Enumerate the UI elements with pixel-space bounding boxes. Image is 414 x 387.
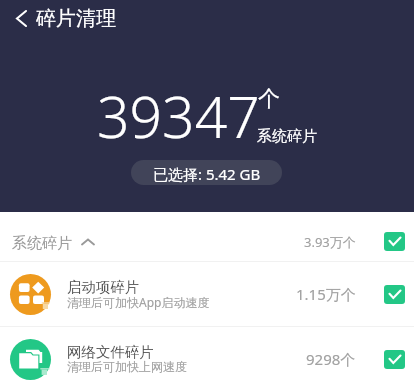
staticText: 系统碎片 xyxy=(12,234,72,253)
button[interactable]: 网络文件碎片 xyxy=(0,327,414,387)
staticText: 碎片清理 xyxy=(36,6,116,31)
staticText: 3.93万个 xyxy=(304,233,356,251)
staticText: 清理后可加快App启动速度 xyxy=(67,294,210,310)
staticText: 9298个 xyxy=(306,349,356,369)
staticText: 清理后可加快上网速度 xyxy=(67,359,187,374)
button[interactable]: Selected xyxy=(384,350,405,369)
button[interactable]: Back xyxy=(3,0,39,36)
staticText: 39347 xyxy=(97,77,260,155)
staticText: 网络文件碎片 xyxy=(67,343,154,361)
button[interactable]: 系统碎片 xyxy=(0,212,414,261)
button[interactable]: Selected xyxy=(384,285,405,304)
staticText: 1.15万个 xyxy=(296,284,356,304)
staticText: 系统碎片 xyxy=(257,127,317,146)
button[interactable]: 已选择: 5.42 GB xyxy=(131,160,282,185)
button[interactable]: Selected xyxy=(384,232,405,251)
button[interactable]: 启动项碎片 xyxy=(0,262,414,326)
staticText: 启动项碎片 xyxy=(67,278,140,296)
staticText: 个 xyxy=(258,85,280,113)
staticText: 已选择: 5.42 GB xyxy=(153,164,261,184)
